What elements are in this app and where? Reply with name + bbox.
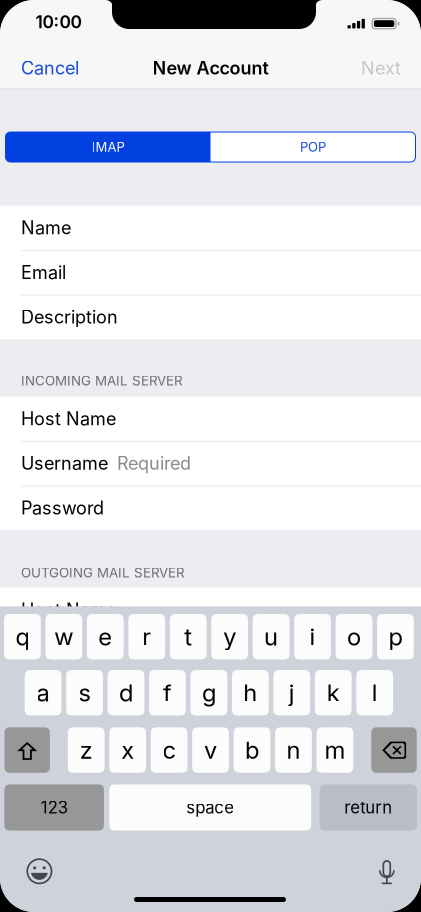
button[interactable]: Password [0, 486, 421, 530]
staticText: Host Name [21, 408, 116, 430]
staticText: Description [21, 306, 118, 328]
staticText: Required [117, 452, 191, 474]
staticText: i [310, 622, 316, 651]
staticText: w [54, 622, 73, 651]
staticText: Email [21, 261, 66, 283]
staticText: IMAP [91, 139, 124, 155]
button[interactable]: u [253, 614, 289, 659]
staticText: x [121, 735, 134, 764]
staticText: Next [361, 57, 401, 79]
button[interactable]: Host Name [0, 588, 421, 632]
button[interactable]: b [234, 727, 270, 773]
staticText: o [347, 622, 361, 651]
button[interactable]: o [336, 614, 372, 659]
button[interactable]: Delete [371, 727, 417, 773]
staticText: v [204, 735, 217, 764]
button[interactable]: Next [341, 48, 401, 88]
staticText: u [264, 622, 278, 651]
staticText: POP [300, 139, 326, 155]
staticText: Name [21, 217, 71, 239]
button[interactable]: l [356, 670, 393, 715]
button[interactable]: c [151, 727, 187, 773]
button[interactable]: x [109, 727, 146, 773]
staticText: y [223, 622, 236, 651]
button[interactable]: return [320, 784, 417, 831]
button[interactable]: space [109, 784, 311, 831]
staticText: Host Name [21, 599, 116, 621]
staticText: l [372, 678, 378, 707]
staticText: New Account [152, 57, 268, 79]
staticText: 10:00 [35, 11, 81, 32]
button[interactable]: p [377, 614, 414, 659]
staticText: h [243, 678, 257, 707]
button[interactable]: v [192, 727, 229, 773]
button[interactable]: Username [0, 441, 421, 486]
staticText: p [388, 622, 402, 651]
staticText: k [327, 678, 340, 707]
staticText: r [142, 622, 151, 651]
staticText: g [202, 678, 216, 707]
button[interactable]: z [68, 727, 105, 773]
staticText: f [163, 678, 172, 707]
button[interactable]: Email [0, 250, 421, 295]
staticText: t [184, 622, 192, 651]
button[interactable]: Cancel [0, 48, 74, 88]
staticText: Password [21, 497, 104, 519]
button[interactable]: w [45, 614, 82, 659]
button[interactable]: t [170, 614, 207, 659]
button[interactable]: IMAP [5, 132, 210, 162]
button[interactable]: Emoji keyboard [24, 856, 54, 886]
staticText: INCOMING MAIL SERVER [21, 373, 183, 389]
button[interactable]: Description [0, 295, 421, 339]
button[interactable]: Name [0, 205, 421, 250]
staticText: return [344, 797, 392, 818]
button[interactable]: j [273, 670, 310, 715]
button[interactable]: 123 [4, 784, 104, 831]
button[interactable]: d [108, 670, 144, 715]
staticText: q [15, 622, 29, 651]
button[interactable]: Shift [4, 727, 50, 773]
button[interactable]: h [232, 670, 269, 715]
button[interactable]: r [128, 614, 165, 659]
staticText: space [186, 797, 234, 818]
button[interactable]: Host Name [0, 396, 421, 441]
staticText: e [98, 622, 112, 651]
button[interactable]: POP [210, 132, 415, 162]
staticText: 123 [41, 797, 68, 818]
staticText: s [79, 678, 91, 707]
staticText: b [245, 735, 259, 764]
button[interactable]: g [190, 670, 227, 715]
staticText: m [324, 735, 345, 764]
button[interactable]: e [87, 614, 124, 659]
button[interactable]: q [4, 614, 41, 659]
button[interactable]: k [315, 670, 352, 715]
staticText: OUTGOING MAIL SERVER [21, 565, 185, 581]
button[interactable]: m [316, 727, 353, 773]
staticText: Username [21, 452, 108, 474]
staticText: c [163, 735, 176, 764]
staticText: n [286, 735, 300, 764]
button[interactable]: n [275, 727, 312, 773]
button[interactable]: Dictation [372, 855, 402, 885]
button[interactable]: s [66, 670, 103, 715]
button[interactable]: a [25, 670, 61, 715]
staticText: j [289, 678, 295, 707]
staticText: Cancel [21, 57, 79, 79]
button[interactable]: i [294, 614, 331, 659]
staticText: a [37, 678, 50, 707]
button[interactable]: f [149, 670, 186, 715]
staticText: z [80, 735, 93, 764]
staticText: d [119, 678, 133, 707]
button[interactable]: y [211, 614, 248, 659]
